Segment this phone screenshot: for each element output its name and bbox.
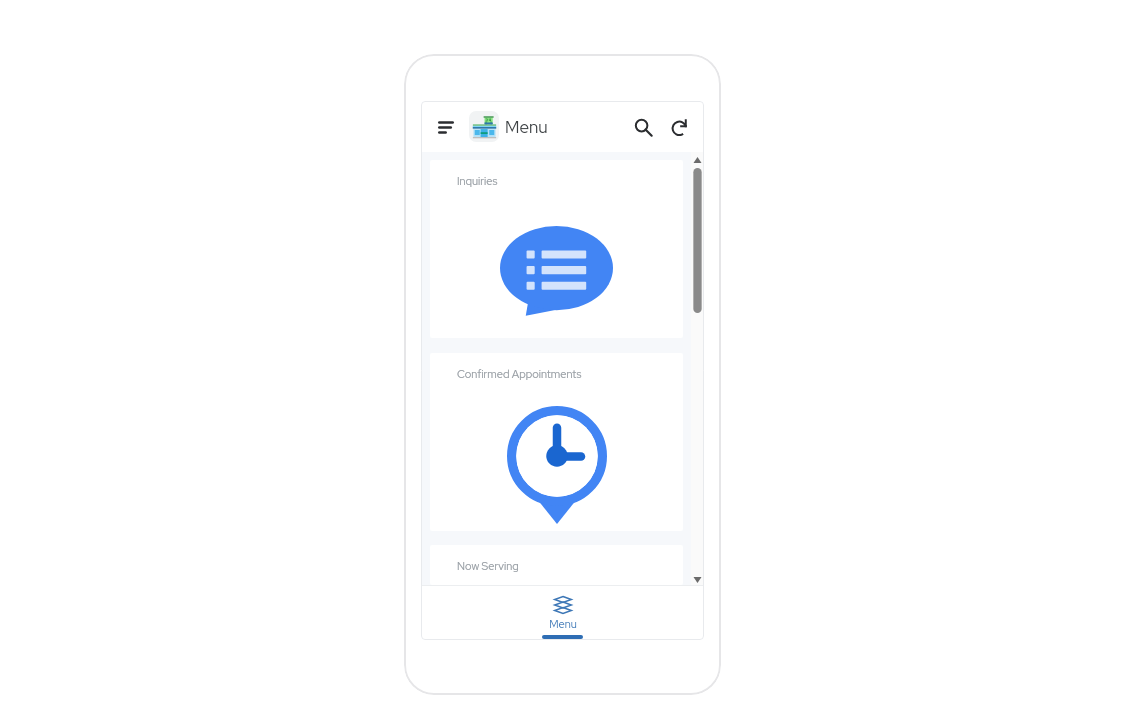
- button[interactable]: Inquiries: [430, 160, 683, 338]
- staticText: Inquiries: [457, 174, 498, 189]
- button[interactable]: Confirmed Appointments: [430, 353, 683, 531]
- staticText: Now Serving: [457, 559, 519, 574]
- button[interactable]: Menu: [527, 585, 599, 640]
- button[interactable]: Now Serving: [430, 545, 683, 585]
- staticText: Confirmed Appointments: [457, 367, 582, 382]
- button[interactable]: Store: [469, 111, 499, 142]
- button[interactable]: Search: [627, 111, 659, 143]
- button[interactable]: Open navigation menu: [432, 113, 460, 141]
- staticText: Menu: [549, 617, 577, 632]
- staticText: Menu: [505, 116, 548, 138]
- button[interactable]: Refresh: [664, 111, 696, 143]
